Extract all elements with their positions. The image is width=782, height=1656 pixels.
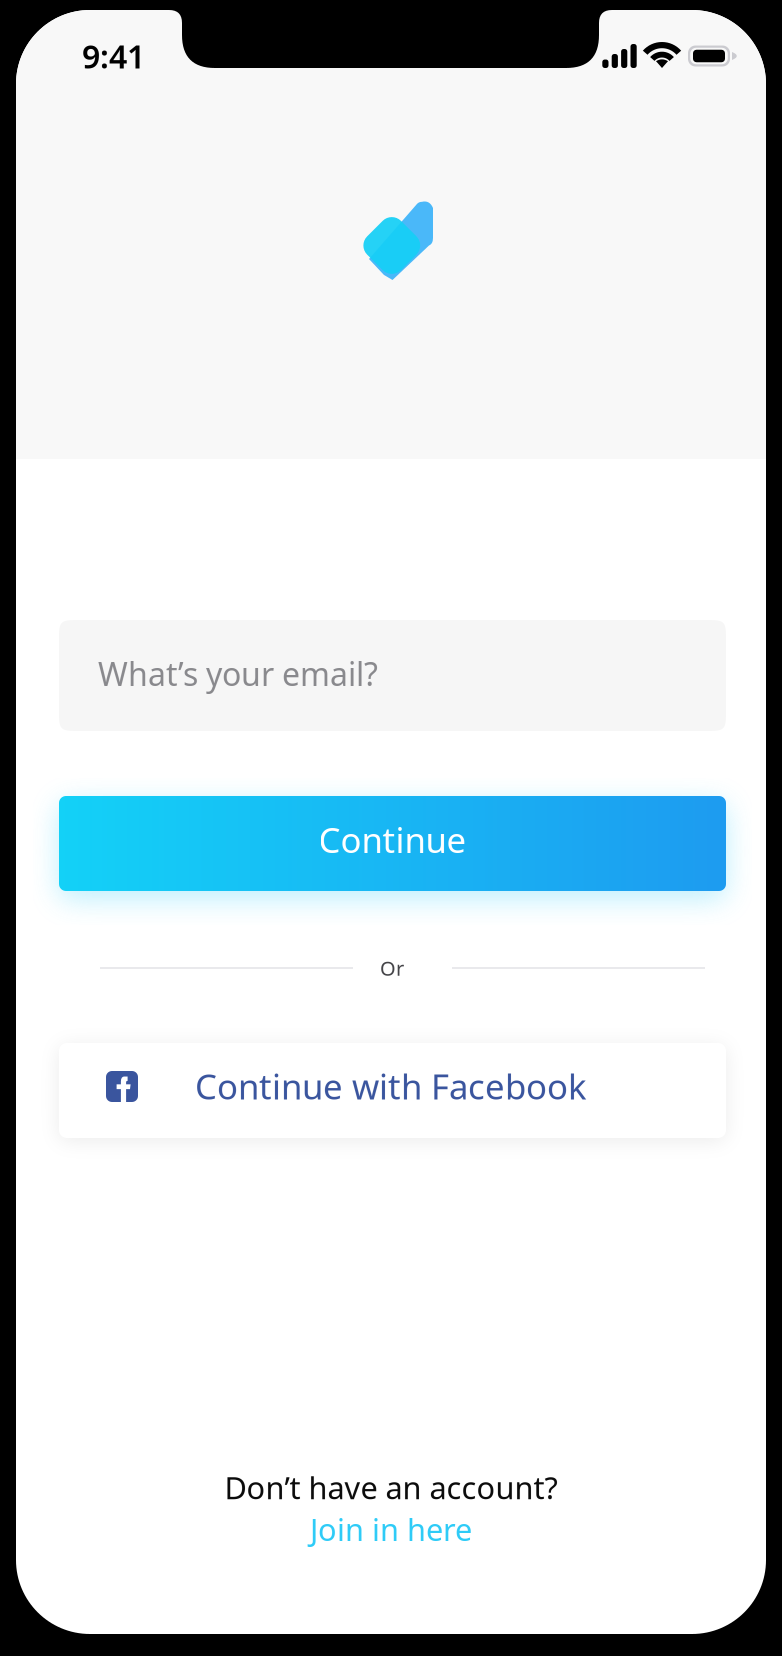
button[interactable]: Join in here (310, 1509, 472, 1549)
staticText: What’s your email? (98, 652, 378, 695)
button[interactable]: Continue (59, 796, 726, 891)
staticText: Or (380, 955, 404, 981)
staticText: 9:41 (82, 35, 145, 77)
staticText: Continue (318, 816, 466, 862)
button[interactable]: Continue with Facebook (59, 1043, 726, 1138)
staticText: Join in here (310, 1509, 472, 1549)
button[interactable]: What’s your email? (59, 620, 726, 731)
staticText: Continue with Facebook (195, 1063, 587, 1109)
staticText: Don’t have an account? (224, 1467, 557, 1508)
